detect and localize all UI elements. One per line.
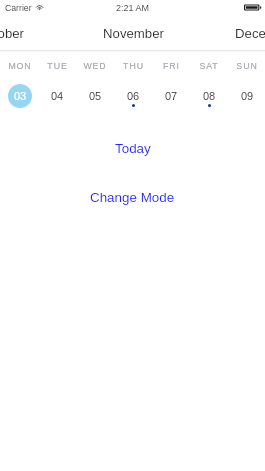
button[interactable]: 04 [38,75,76,117]
staticText: TUE [47,61,68,71]
staticText: October [0,26,24,41]
staticText: MON [8,61,32,71]
staticText: Today [115,141,151,156]
button[interactable]: 09 [228,75,265,117]
staticText: December [235,26,265,41]
button[interactable]: 08 [190,75,228,117]
staticText: Carrier [5,3,32,13]
button[interactable]: Today [105,137,161,160]
other: Wi-Fi [35,3,44,10]
staticText: 07 [165,90,178,102]
staticText: 08 [203,90,216,102]
staticText: 2:21 AM [116,3,150,13]
staticText: SUN [236,61,258,71]
button[interactable]: 07 [152,75,190,117]
staticText: FRI [163,61,180,71]
staticText: 06 [127,90,140,102]
button[interactable]: December [205,20,265,46]
button[interactable]: November [73,20,193,46]
button[interactable]: 06 [114,75,152,117]
other: Battery [244,4,262,11]
staticText: 09 [241,90,254,102]
staticText: THU [123,61,144,71]
button[interactable]: October [0,20,60,46]
button[interactable]: 03 [1,75,38,117]
staticText: SAT [199,61,219,71]
button[interactable]: 05 [76,75,114,117]
staticText: November [103,26,164,41]
staticText: Change Mode [90,190,175,205]
button[interactable]: Change Mode [80,186,185,209]
staticText: 03 [14,90,27,102]
staticText: 05 [89,90,102,102]
staticText: WED [83,61,107,71]
staticText: 04 [51,90,64,102]
